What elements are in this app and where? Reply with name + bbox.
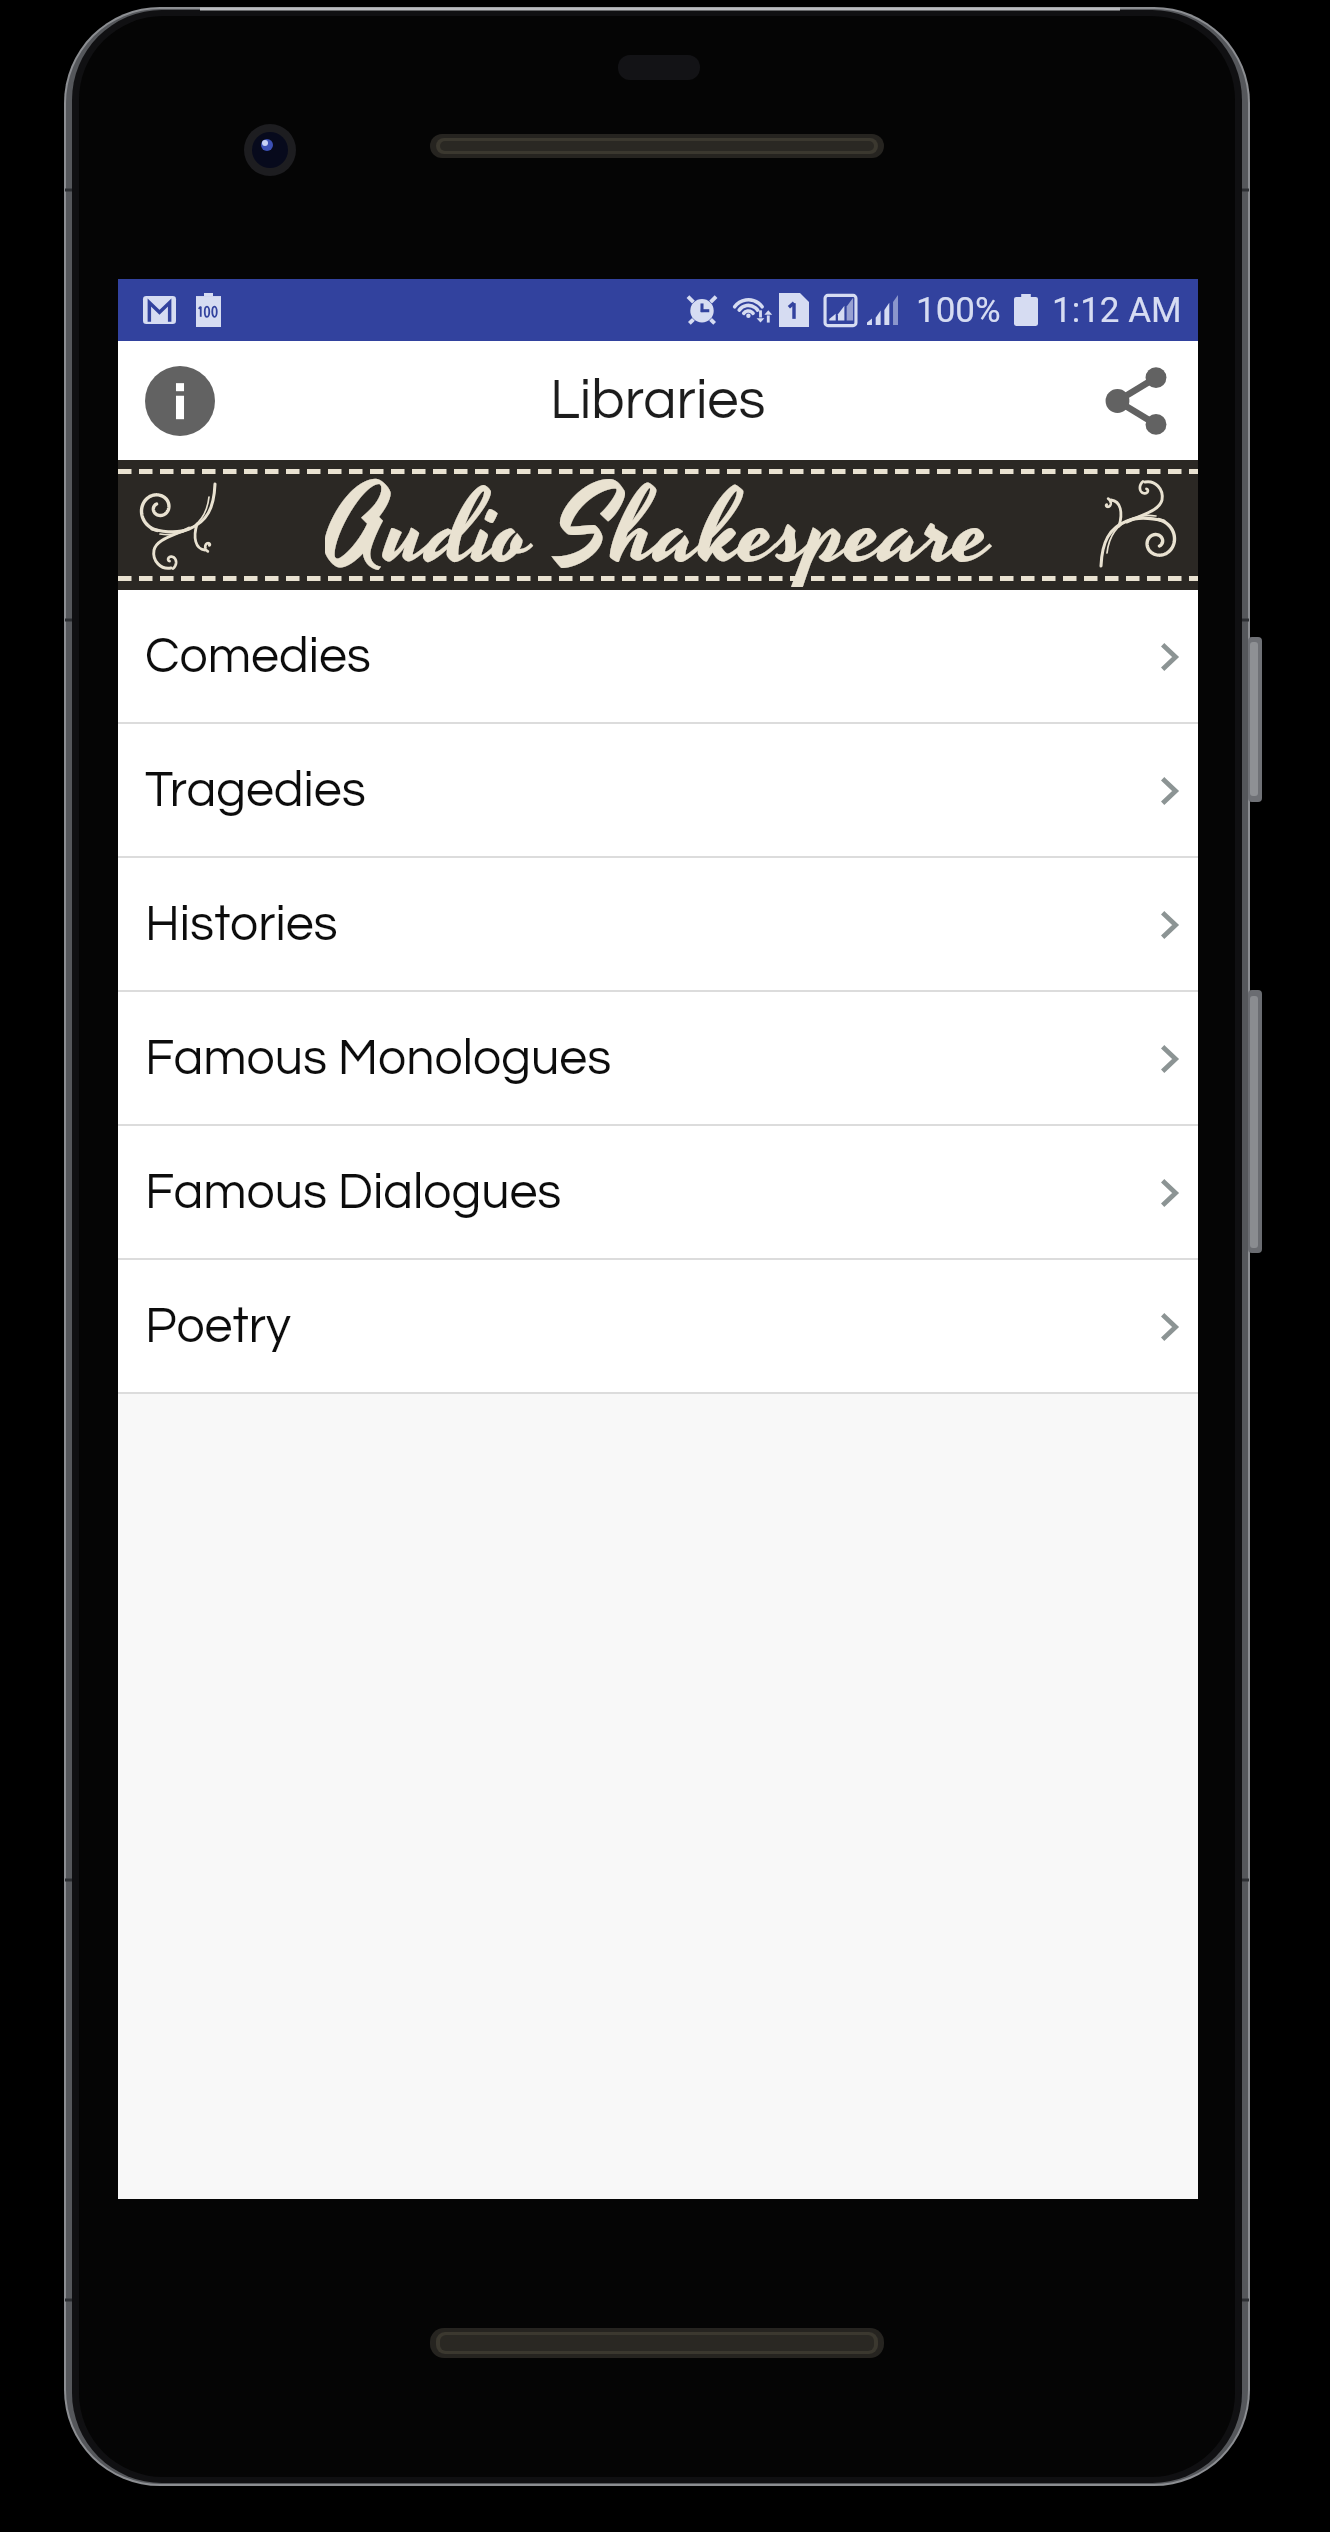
- staticText: Audio Shakespeare: [325, 457, 992, 587]
- button[interactable]: Info: [143, 364, 217, 438]
- staticText: Tragedies: [145, 765, 366, 817]
- button[interactable]: Famous Dialogues: [118, 1126, 1198, 1260]
- button[interactable]: Share: [1098, 361, 1178, 441]
- staticText: 1:12 AM: [1052, 290, 1182, 331]
- button[interactable]: Tragedies: [118, 724, 1198, 858]
- staticText: 100%: [916, 290, 1001, 331]
- button[interactable]: Poetry: [118, 1260, 1198, 1394]
- staticText: Comedies: [145, 631, 371, 683]
- button[interactable]: Famous Monologues: [118, 992, 1198, 1126]
- staticText: Libraries: [550, 372, 766, 430]
- staticText: Poetry: [145, 1301, 291, 1353]
- button[interactable]: Comedies: [118, 590, 1198, 724]
- staticText: Famous Monologues: [145, 1033, 612, 1085]
- button[interactable]: Histories: [118, 858, 1198, 992]
- staticText: Histories: [145, 899, 338, 951]
- staticText: Famous Dialogues: [145, 1167, 562, 1219]
